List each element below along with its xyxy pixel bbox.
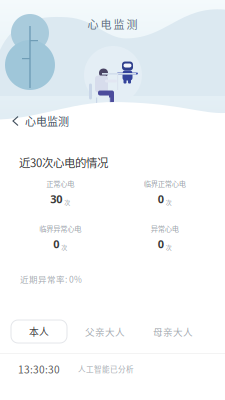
staticText: 正常心电 bbox=[46, 178, 74, 189]
staticText: 0 bbox=[158, 237, 164, 252]
staticText: 异常心电 bbox=[151, 223, 179, 234]
button[interactable]: 心电监测 bbox=[0, 108, 77, 134]
staticText: 近30次心电的情况 bbox=[19, 154, 108, 170]
staticText: 13:30:30 bbox=[18, 362, 60, 376]
staticText: 次 bbox=[166, 198, 172, 207]
button[interactable]: 母亲大人 bbox=[144, 320, 202, 343]
staticText: 心 电 监 测 bbox=[87, 16, 137, 32]
staticText: 母亲大人 bbox=[153, 324, 193, 338]
staticText: 临界异常心电 bbox=[39, 223, 81, 234]
staticText: 本人 bbox=[29, 324, 49, 339]
staticText: 人工智能已分析 bbox=[78, 363, 134, 374]
staticText: 30 bbox=[50, 192, 62, 207]
staticText: 0 bbox=[53, 237, 59, 252]
staticText: 心电监测 bbox=[25, 113, 69, 129]
staticText: 0 bbox=[158, 192, 164, 207]
button[interactable]: 本人 bbox=[11, 320, 67, 343]
staticText: 近期异常率: 0% bbox=[20, 273, 82, 285]
staticText: 次 bbox=[166, 243, 172, 252]
staticText: 临界正常心电 bbox=[144, 178, 186, 189]
button[interactable]: 父亲大人 bbox=[76, 320, 134, 343]
staticText: 次 bbox=[64, 198, 70, 207]
staticText: 次 bbox=[61, 243, 67, 252]
staticText: 父亲大人 bbox=[85, 324, 125, 338]
